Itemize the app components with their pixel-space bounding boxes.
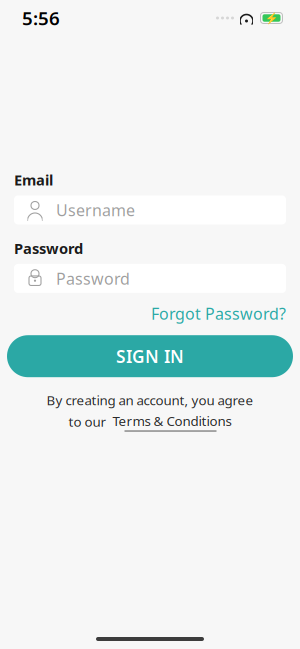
button[interactable]: Terms & Conditions [109, 412, 231, 431]
button[interactable]: Password [14, 264, 286, 293]
staticText: Terms & Conditions [109, 412, 231, 430]
button[interactable]: Username [14, 195, 286, 224]
staticText: Forgot Password? [151, 303, 286, 324]
staticText: Email [14, 170, 53, 189]
staticText: By creating an account, you agree [46, 391, 253, 409]
staticText: 5:56 [22, 6, 60, 30]
staticText: ⚡ [265, 12, 278, 24]
button[interactable]: Forgot Password? [151, 301, 286, 326]
staticText: Password [14, 238, 83, 258]
staticText: SIGN IN [116, 345, 184, 368]
staticText: to our [68, 413, 109, 430]
button[interactable]: SIGN IN [7, 335, 293, 377]
staticText: Username [56, 199, 135, 221]
staticText: Password [56, 268, 130, 289]
